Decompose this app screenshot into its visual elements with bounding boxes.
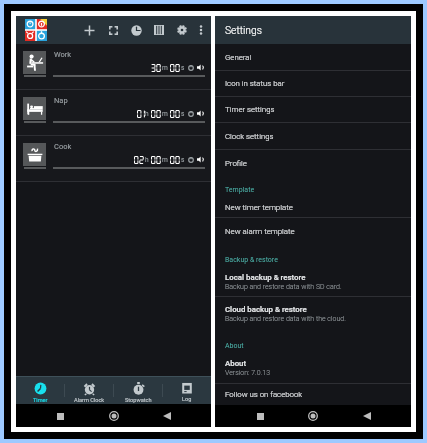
button[interactable]: Back bbox=[158, 407, 176, 425]
button[interactable]: Home bbox=[105, 407, 123, 425]
button[interactable]: Profile bbox=[215, 150, 411, 177]
staticText: About bbox=[225, 342, 244, 350]
button[interactable]: Statistics bbox=[150, 21, 168, 39]
button[interactable]: Alarm Clock bbox=[65, 377, 113, 404]
staticText: Timer bbox=[33, 397, 48, 404]
button[interactable]: Home bbox=[304, 407, 322, 425]
staticText: Alarm Clock bbox=[74, 397, 105, 404]
staticText: Timer settings bbox=[225, 105, 275, 114]
staticText: Icon in status bar bbox=[225, 79, 285, 88]
button[interactable]: Back bbox=[358, 407, 376, 425]
button[interactable]: Timer bbox=[16, 377, 64, 404]
staticText: Template bbox=[225, 186, 255, 194]
button[interactable]: Follow us on facebook bbox=[215, 384, 411, 405]
button[interactable]: Clock bbox=[127, 21, 145, 39]
button[interactable]: Timer settings bbox=[215, 97, 411, 123]
staticText: m bbox=[162, 64, 168, 72]
staticText: New alarm template bbox=[225, 227, 295, 236]
button[interactable]: Recents bbox=[51, 407, 69, 425]
button[interactable]: Local backup & restore bbox=[215, 267, 411, 297]
button[interactable]: Stopwatch bbox=[114, 377, 162, 404]
staticText: Stopwatch bbox=[125, 397, 152, 404]
button[interactable]: App icon bbox=[25, 19, 47, 41]
staticText: m bbox=[162, 110, 168, 118]
staticText: Work bbox=[54, 50, 72, 59]
other: Repeat bbox=[188, 157, 194, 163]
staticText: Cloud backup & restore bbox=[225, 305, 307, 314]
other: Repeat bbox=[188, 65, 194, 71]
button[interactable]: Nap bbox=[16, 90, 211, 136]
staticText: Version: 7.0.13 bbox=[225, 369, 271, 377]
staticText: Cook bbox=[54, 142, 72, 151]
button[interactable]: Fullscreen bbox=[104, 21, 122, 39]
staticText: Follow us on facebook bbox=[225, 390, 303, 399]
button[interactable]: Recents bbox=[251, 407, 269, 425]
button[interactable]: Icon in status bar bbox=[215, 71, 411, 97]
button[interactable]: About bbox=[215, 353, 411, 384]
staticText: General bbox=[225, 53, 252, 62]
staticText: Backup & restore bbox=[225, 256, 278, 264]
button[interactable]: New alarm template bbox=[215, 218, 411, 244]
staticText: Nap bbox=[54, 96, 68, 105]
staticText: Log bbox=[182, 396, 192, 403]
staticText: m bbox=[162, 156, 168, 164]
other: Sound bbox=[197, 64, 204, 71]
staticText: h bbox=[145, 156, 149, 164]
button[interactable]: Clock settings bbox=[215, 123, 411, 150]
button[interactable]: General bbox=[215, 44, 411, 71]
button[interactable]: More options bbox=[192, 21, 210, 39]
other: Sound bbox=[197, 156, 204, 163]
button[interactable]: Log bbox=[163, 377, 211, 404]
staticText: h bbox=[145, 110, 149, 118]
staticText: Clock settings bbox=[225, 132, 274, 141]
button[interactable]: Settings bbox=[173, 21, 191, 39]
staticText: Backup and restore data with SD card. bbox=[225, 283, 342, 291]
staticText: About bbox=[225, 359, 247, 368]
staticText: s bbox=[181, 156, 185, 164]
staticText: s bbox=[181, 64, 185, 72]
button[interactable]: New timer template bbox=[215, 197, 411, 218]
button[interactable]: Add timer bbox=[80, 21, 98, 39]
staticText: New timer template bbox=[225, 203, 293, 212]
staticText: Local backup & restore bbox=[225, 273, 306, 282]
other: Sound bbox=[197, 110, 204, 117]
staticText: Backup and restore data with the cloud. bbox=[225, 315, 346, 323]
staticText: Profile bbox=[225, 159, 247, 168]
button[interactable]: Cook bbox=[16, 136, 211, 182]
other: Repeat bbox=[188, 111, 194, 117]
button[interactable]: Cloud backup & restore bbox=[215, 297, 411, 330]
button[interactable]: Work bbox=[16, 44, 211, 90]
staticText: Settings bbox=[225, 24, 262, 36]
staticText: s bbox=[181, 110, 185, 118]
